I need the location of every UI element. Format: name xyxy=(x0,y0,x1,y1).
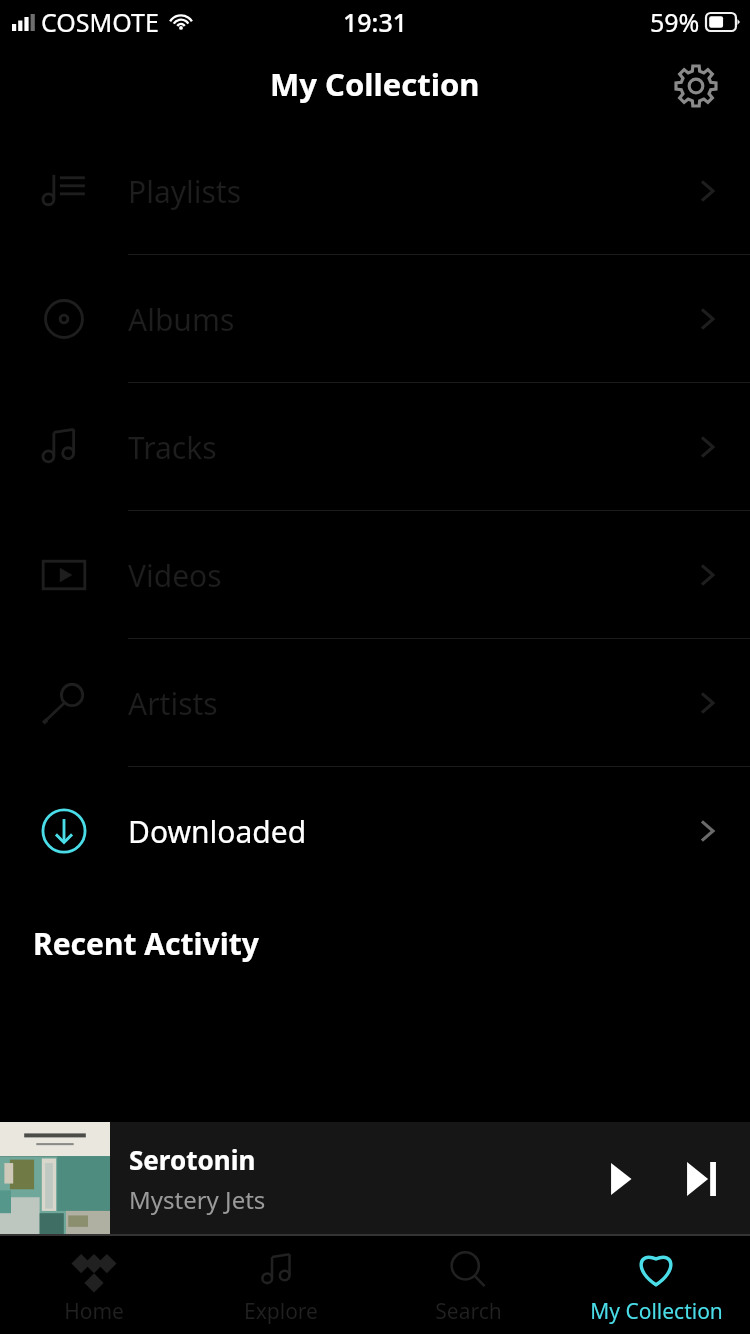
button[interactable]: Playlists xyxy=(0,127,750,255)
staticText: Albums xyxy=(128,299,235,340)
button[interactable]: Search xyxy=(374,1236,562,1334)
staticText: Playlists xyxy=(128,171,242,212)
button[interactable]: Downloaded xyxy=(0,767,750,895)
button[interactable]: Artists xyxy=(0,639,750,767)
staticText: Serotonin xyxy=(129,1142,256,1177)
button[interactable]: My Collection xyxy=(562,1236,750,1334)
staticText: Artists xyxy=(128,683,218,724)
button[interactable]: Next xyxy=(670,1147,734,1211)
staticText: 19:31 xyxy=(343,5,408,39)
staticText: My Collection xyxy=(270,63,480,105)
staticText: Search xyxy=(435,1297,502,1326)
staticText: Explore xyxy=(244,1297,318,1326)
button[interactable]: Explore xyxy=(187,1236,374,1334)
button[interactable]: Albums xyxy=(0,255,750,383)
button[interactable]: Serotonin xyxy=(0,1122,750,1236)
staticText: Recent Activity xyxy=(33,923,259,964)
staticText: Downloaded xyxy=(128,811,307,852)
button[interactable]: Settings xyxy=(672,62,720,110)
button[interactable]: Videos xyxy=(0,511,750,639)
staticText: Videos xyxy=(128,555,222,596)
staticText: 59% xyxy=(650,5,700,39)
button[interactable]: Tracks xyxy=(0,383,750,511)
button[interactable]: Home xyxy=(0,1236,187,1334)
staticText: COSMOTE xyxy=(41,5,159,39)
button[interactable]: Play xyxy=(588,1147,652,1211)
staticText: Mystery Jets xyxy=(129,1183,266,1216)
staticText: My Collection xyxy=(590,1297,723,1326)
staticText: Home xyxy=(64,1297,124,1326)
staticText: Tracks xyxy=(128,427,217,468)
